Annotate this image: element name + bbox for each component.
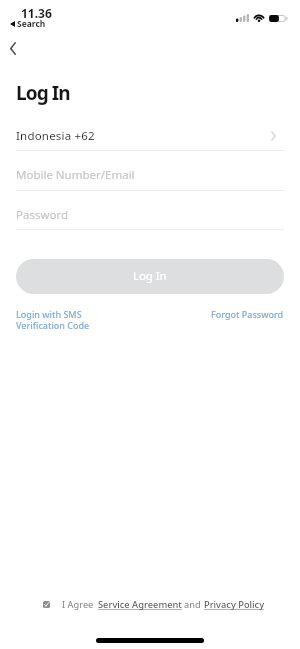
staticText: and [184,598,201,611]
staticText: 11.36 [21,5,52,21]
button[interactable]: Indonesia +62 [0,123,300,148]
button[interactable]: Privacy Policy [204,598,265,611]
button[interactable]: Service Agreement [98,598,182,611]
button[interactable]: Forgot Password [211,308,284,320]
staticText: Login with SMS Verification Code [16,308,90,332]
staticText: I Agree [62,598,94,611]
button[interactable]: Mobile Number/Email [0,162,300,187]
staticText: Password [16,207,69,223]
staticText: Mobile Number/Email [16,167,135,183]
button[interactable]: Login with SMS Verification Code [16,308,90,332]
staticText: Search [17,18,46,30]
button[interactable]: Password [0,202,300,227]
staticText: Privacy Policy [204,598,265,611]
button[interactable]: Back [0,33,26,63]
staticText: Log In [16,80,70,106]
staticText: Indonesia +62 [16,128,95,144]
staticText: Log In [133,268,167,284]
staticText: Forgot Password [211,308,284,320]
button[interactable]: I Agree checkbox [43,601,50,608]
staticText: Service Agreement [98,598,182,611]
button[interactable]: Log In [16,259,284,294]
